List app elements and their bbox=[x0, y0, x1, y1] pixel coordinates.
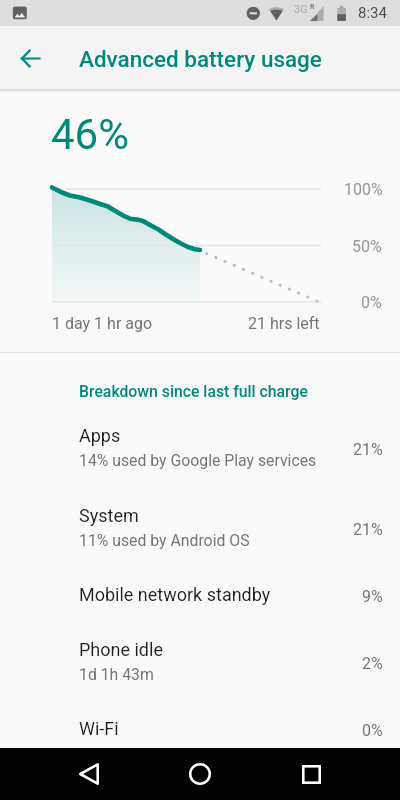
button[interactable]: Recent apps bbox=[285, 748, 337, 800]
staticText: 11% used by Android OS bbox=[79, 531, 250, 550]
staticText: 1d 1h 43m bbox=[79, 665, 154, 684]
staticText: 2% bbox=[362, 654, 383, 673]
staticText: 9% bbox=[362, 587, 383, 606]
staticText: R bbox=[310, 3, 315, 11]
staticText: Phone idle bbox=[79, 639, 163, 660]
staticText: 0% bbox=[361, 293, 382, 312]
staticText: Advanced battery usage bbox=[79, 46, 322, 72]
staticText: 14% used by Google Play services bbox=[79, 451, 317, 470]
staticText: Wi-Fi bbox=[79, 718, 119, 739]
button[interactable]: Phone idle bbox=[0, 621, 400, 701]
button[interactable]: Home bbox=[174, 748, 226, 800]
staticText: 1 day 1 hr ago bbox=[52, 314, 153, 333]
staticText: 8:34 bbox=[358, 4, 387, 22]
button[interactable]: Back bbox=[63, 748, 115, 800]
button[interactable]: Mobile network standby bbox=[0, 567, 400, 621]
staticText: 3G bbox=[294, 3, 308, 16]
staticText: Mobile network standby bbox=[79, 584, 271, 605]
staticText: 21% bbox=[353, 440, 383, 459]
staticText: 100% bbox=[344, 180, 383, 199]
staticText: 21% bbox=[353, 520, 383, 539]
staticText: 50% bbox=[352, 237, 382, 256]
button[interactable]: Apps bbox=[0, 407, 400, 487]
staticText: 46% bbox=[51, 110, 129, 159]
button[interactable]: Wi-Fi bbox=[0, 701, 400, 755]
staticText: 0% bbox=[362, 721, 383, 740]
staticText: Apps bbox=[79, 425, 121, 446]
button[interactable]: System bbox=[0, 487, 400, 567]
staticText: 21 hrs left bbox=[248, 314, 320, 333]
staticText: System bbox=[79, 505, 139, 526]
button[interactable]: Navigate up bbox=[6, 34, 54, 82]
staticText: Breakdown since last full charge bbox=[79, 382, 308, 401]
